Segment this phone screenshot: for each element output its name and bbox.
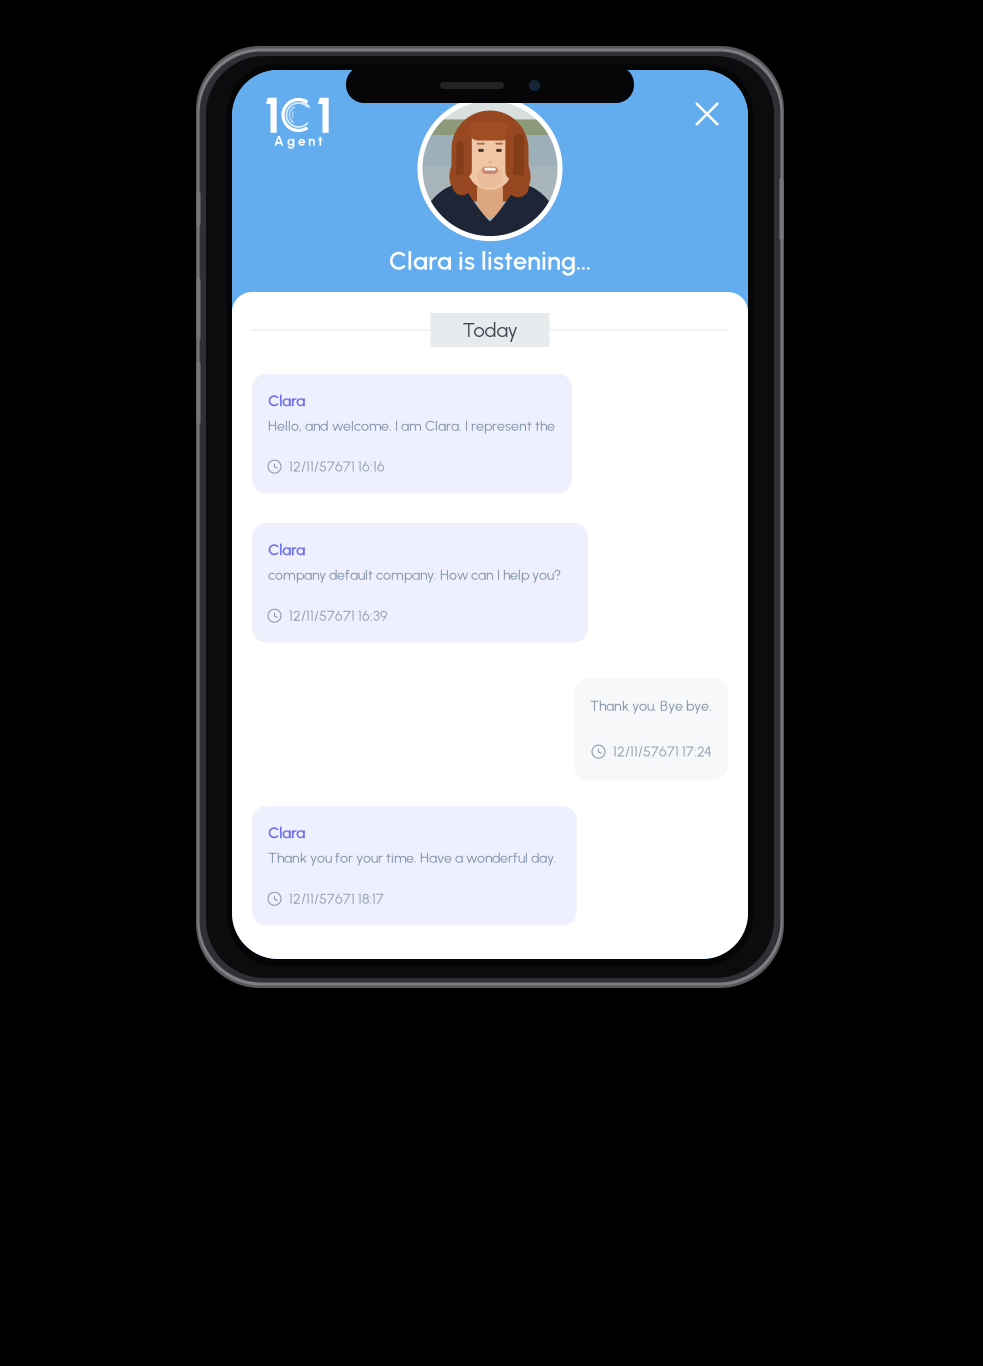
staticText: 12/11/57671 16:39	[289, 607, 387, 624]
staticText: Thank you. Bye bye.	[590, 697, 712, 714]
staticText: 12/11/57671 17:24	[613, 743, 712, 760]
staticText: 12/11/57671 18:17	[289, 890, 384, 907]
staticText: 1	[264, 85, 281, 145]
staticText: Today	[462, 318, 517, 342]
staticText: Clara	[268, 540, 305, 559]
staticText: 1	[316, 85, 333, 145]
staticText: Clara is listening...	[389, 246, 591, 276]
staticText: A g e n t	[274, 133, 323, 149]
staticText: 12/11/57671 16:16	[289, 458, 385, 475]
staticText: Clara	[268, 823, 305, 842]
staticText: Hello, and welcome. I am Clara. I repres…	[268, 417, 555, 434]
staticText: Thank you for your time. Have a wonderfu…	[268, 849, 557, 866]
button[interactable]: Close	[685, 92, 729, 136]
staticText: company default company. How can I help …	[268, 566, 561, 583]
staticText: Clara	[268, 391, 305, 410]
